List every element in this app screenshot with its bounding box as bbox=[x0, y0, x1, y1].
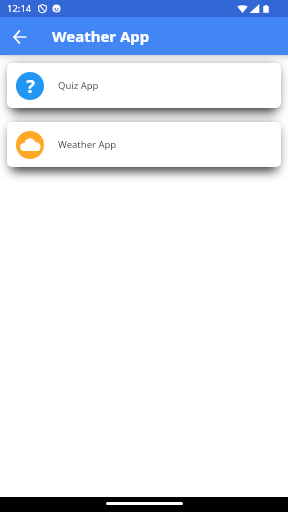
staticText: Quiz App bbox=[58, 79, 99, 92]
staticText: Weather App bbox=[58, 138, 117, 151]
button[interactable]: Back bbox=[0, 17, 38, 55]
staticText: 12:14 bbox=[7, 2, 32, 15]
button[interactable]: ? bbox=[7, 63, 281, 108]
staticText: ? bbox=[26, 74, 35, 99]
staticText: Weather App bbox=[52, 26, 150, 46]
button[interactable]: Weather App bbox=[7, 122, 281, 167]
